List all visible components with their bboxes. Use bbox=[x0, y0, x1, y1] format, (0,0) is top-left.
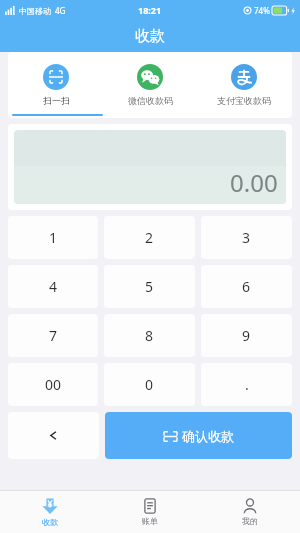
staticText: 确认收款 bbox=[182, 428, 234, 444]
staticText: 收款 bbox=[42, 517, 58, 527]
staticText: 18:21 bbox=[138, 4, 162, 16]
button[interactable]: 7 bbox=[8, 314, 98, 357]
staticText: 4 bbox=[49, 277, 58, 296]
button[interactable]: . bbox=[201, 363, 292, 406]
staticText: 00 bbox=[45, 375, 62, 394]
button[interactable]: 微信收款码 bbox=[104, 60, 196, 110]
staticText: 2 bbox=[145, 228, 154, 247]
staticText: 3 bbox=[242, 228, 251, 247]
button[interactable]: 9 bbox=[201, 314, 292, 357]
staticText: 我的 bbox=[242, 516, 258, 526]
button[interactable]: 账单 bbox=[100, 491, 200, 533]
staticText: 收款 bbox=[135, 27, 165, 46]
button[interactable]: 8 bbox=[104, 314, 195, 357]
staticText: 5 bbox=[145, 277, 154, 296]
button[interactable]: 我的 bbox=[200, 491, 300, 533]
staticText: 9 bbox=[242, 326, 251, 345]
button[interactable]: 确认收款 bbox=[105, 412, 292, 459]
button[interactable]: Backspace bbox=[8, 412, 99, 459]
staticText: 7 bbox=[49, 326, 58, 345]
staticText: 8 bbox=[145, 326, 154, 345]
button[interactable]: 1 bbox=[8, 216, 98, 259]
button[interactable]: 3 bbox=[201, 216, 292, 259]
staticText: . bbox=[245, 375, 249, 394]
staticText: 74% bbox=[254, 5, 270, 16]
button[interactable]: 收款 bbox=[0, 491, 100, 533]
button[interactable]: 6 bbox=[201, 265, 292, 308]
staticText: 账单 bbox=[142, 516, 158, 526]
button[interactable]: 5 bbox=[104, 265, 195, 308]
staticText: 扫一扫 bbox=[43, 95, 70, 106]
staticText: 1 bbox=[49, 228, 58, 247]
staticText: 中国移动 bbox=[19, 6, 51, 16]
staticText: 0 bbox=[145, 375, 154, 394]
button[interactable]: 00 bbox=[8, 363, 98, 406]
button[interactable]: 2 bbox=[104, 216, 195, 259]
staticText: 支付宝收款码 bbox=[217, 95, 271, 106]
button[interactable]: 支付宝收款码 bbox=[198, 60, 290, 110]
button[interactable]: 0 bbox=[104, 363, 195, 406]
button[interactable]: 4 bbox=[8, 265, 98, 308]
staticText: 4G bbox=[55, 5, 66, 16]
staticText: 6 bbox=[242, 277, 251, 296]
staticText: 微信收款码 bbox=[128, 95, 173, 106]
staticText: 0.00 bbox=[230, 166, 278, 199]
button[interactable]: 扫一扫 bbox=[10, 60, 102, 110]
